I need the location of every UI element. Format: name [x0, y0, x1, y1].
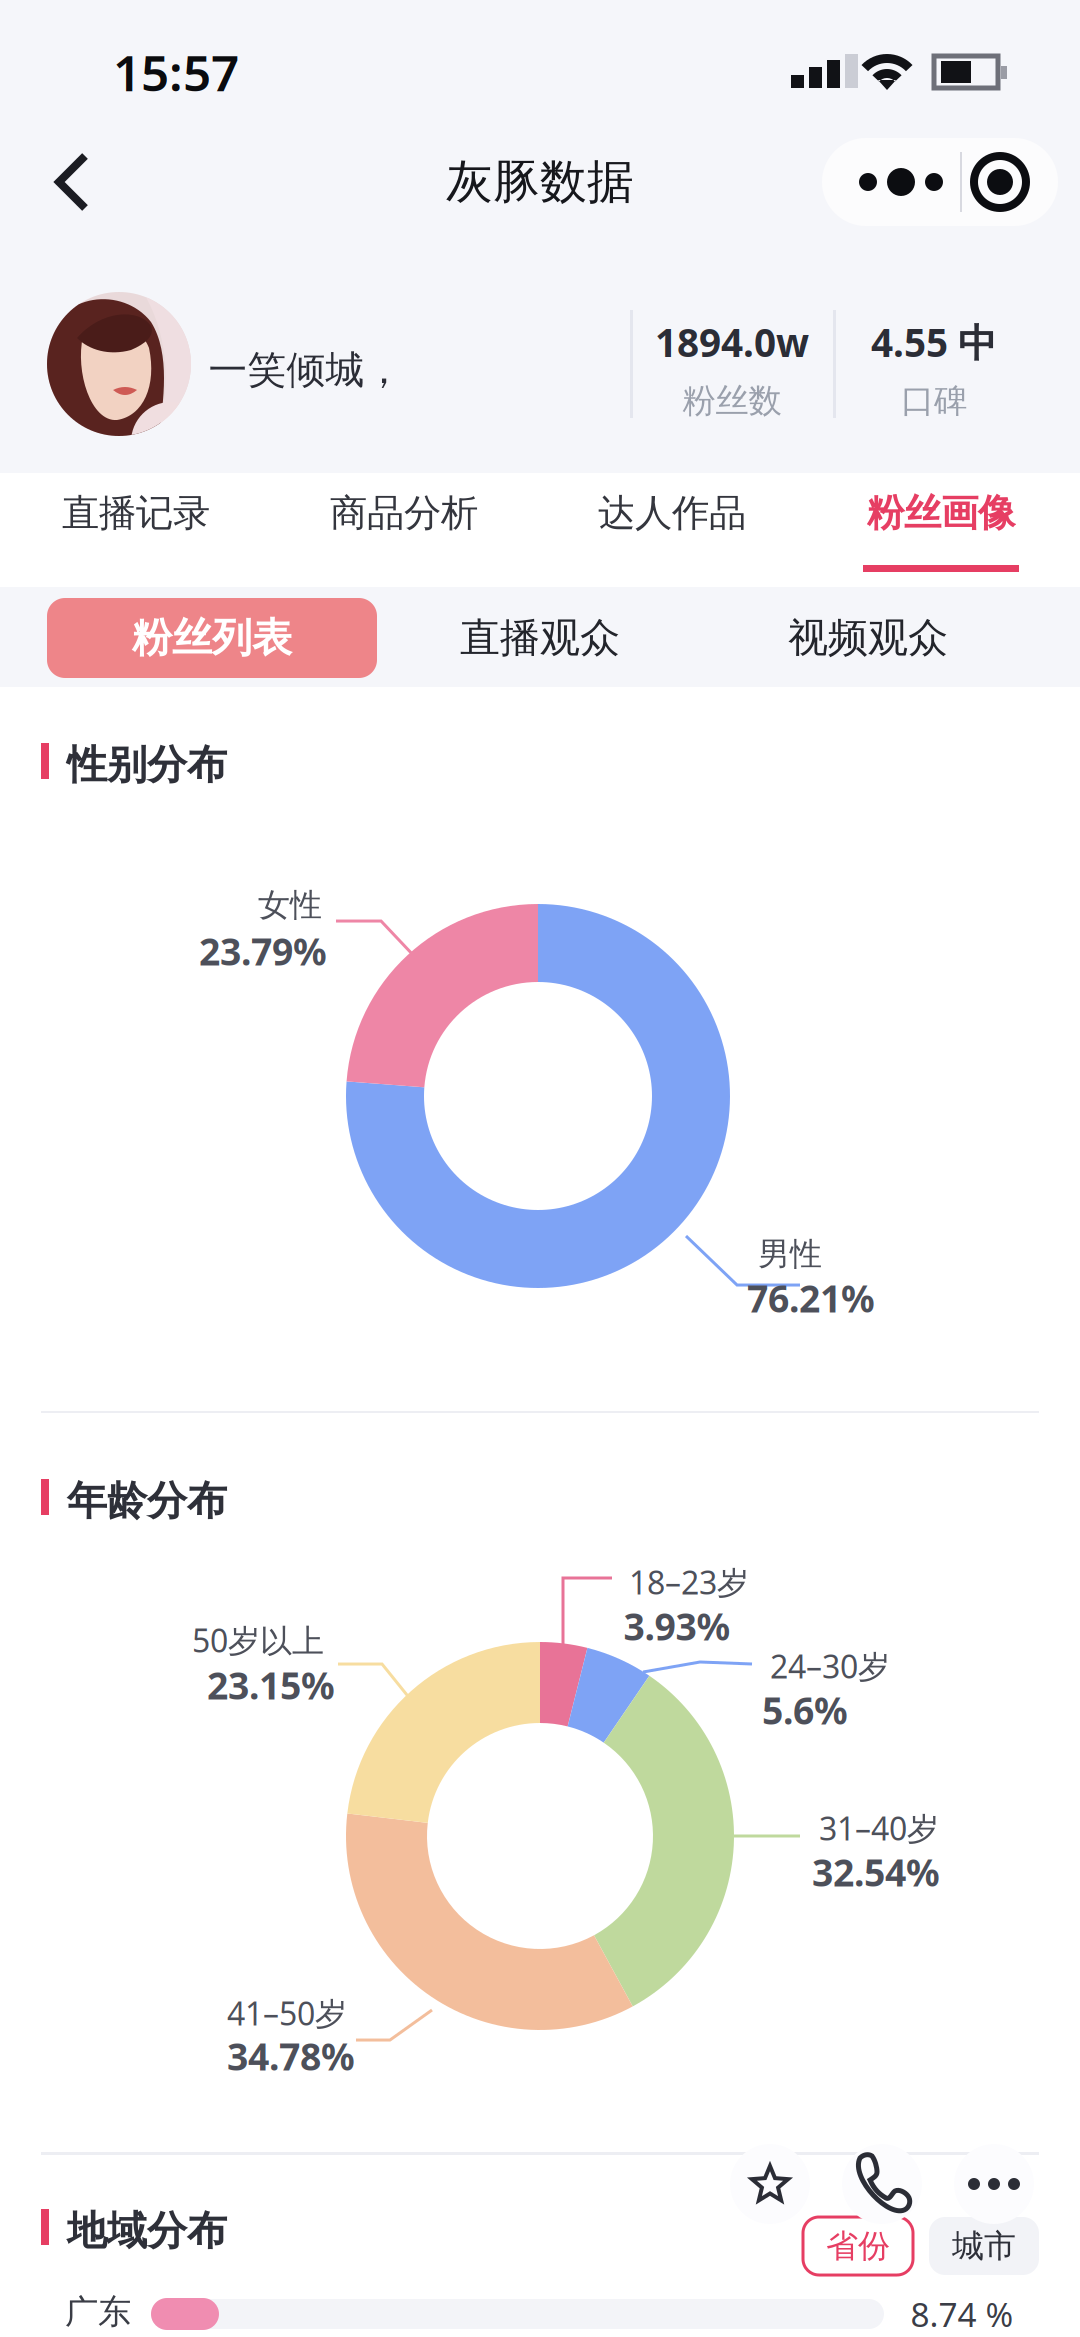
button[interactable]: 直播记录	[16, 473, 256, 587]
staticText: 31–40岁	[819, 1807, 939, 1849]
button[interactable]: 直播观众	[375, 598, 705, 678]
staticText: 76.21%	[747, 1273, 875, 1323]
staticText: 15:57	[113, 39, 239, 105]
staticText: 18–23岁	[629, 1561, 749, 1603]
staticText: 3.93%	[623, 1601, 730, 1651]
staticText: 粉丝列表	[132, 613, 292, 662]
staticText: 广东	[65, 2291, 131, 2332]
staticText: 男性	[758, 1234, 822, 1274]
staticText: 直播记录	[62, 490, 210, 536]
staticText: 粉丝数	[682, 380, 781, 421]
staticText: 24–30岁	[770, 1645, 890, 1687]
button[interactable]: 达人作品	[552, 473, 792, 587]
button[interactable]: 商品分析	[284, 473, 524, 587]
staticText: 4.55 中	[871, 316, 997, 368]
staticText: 性别分布	[67, 740, 227, 789]
button[interactable]: Favorite	[730, 2144, 810, 2224]
staticText: 34.78%	[227, 2031, 355, 2081]
button[interactable]: 省份	[803, 2217, 913, 2275]
staticText: 23.15%	[207, 1660, 335, 1710]
button[interactable]: 视频观众	[703, 598, 1033, 678]
staticText: 商品分析	[330, 490, 478, 536]
staticText: 视频观众	[788, 613, 948, 662]
staticText: 50岁以上	[192, 1619, 324, 1661]
button[interactable]: Back	[43, 142, 103, 222]
staticText: 23.79%	[199, 926, 327, 976]
staticText: 年龄分布	[67, 1476, 227, 1525]
button[interactable]: 城市	[929, 2217, 1039, 2275]
button[interactable]: More options	[822, 138, 1058, 226]
staticText: 灰豚数据	[446, 153, 634, 211]
staticText: 城市	[952, 2226, 1016, 2266]
staticText: 口碑	[901, 380, 967, 421]
staticText: 8.74 %	[910, 2292, 1013, 2336]
staticText: 41–50岁	[227, 1992, 347, 2034]
staticText: 直播观众	[460, 613, 620, 662]
staticText: 32.54%	[812, 1847, 940, 1897]
staticText: 达人作品	[598, 490, 746, 536]
staticText: 一笑倾城，	[208, 346, 403, 394]
button[interactable]: Call	[842, 2144, 922, 2224]
staticText: 地域分布	[67, 2206, 227, 2255]
staticText: 女性	[258, 885, 322, 925]
staticText: 粉丝画像	[867, 490, 1015, 536]
button[interactable]: 粉丝画像	[821, 473, 1061, 587]
staticText: 1894.0w	[655, 316, 809, 368]
button[interactable]: 粉丝列表	[47, 598, 377, 678]
staticText: 5.6%	[762, 1685, 848, 1735]
button[interactable]: More	[954, 2144, 1034, 2224]
staticText: 省份	[826, 2226, 890, 2266]
